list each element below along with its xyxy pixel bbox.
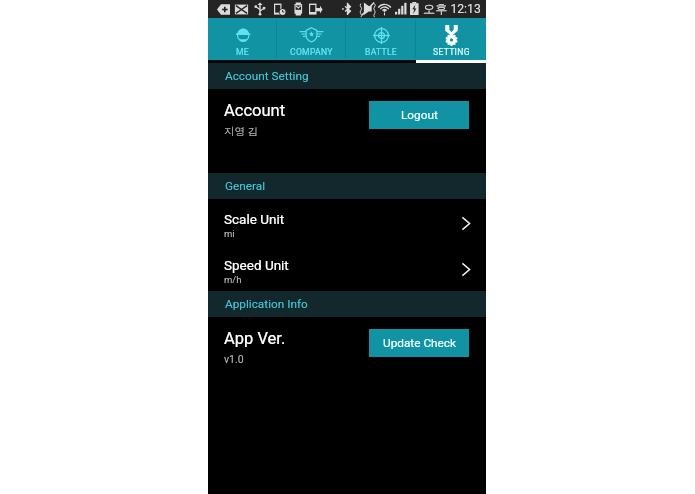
- staticText: 오후 12:13: [423, 1, 481, 16]
- button[interactable]: Scale Unit: [208, 199, 486, 245]
- staticText: General: [225, 179, 266, 193]
- staticText: v1.0: [224, 353, 244, 365]
- button[interactable]: SETTING: [416, 18, 486, 60]
- staticText: BATTLE: [365, 47, 398, 57]
- staticText: Logout: [401, 108, 438, 122]
- button[interactable]: Logout: [369, 101, 469, 129]
- other: Open Scale Unit: [461, 216, 471, 231]
- button[interactable]: Update Check: [369, 329, 469, 357]
- button[interactable]: Speed Unit: [208, 245, 486, 291]
- staticText: 지영 김: [224, 125, 259, 138]
- staticText: mi: [224, 228, 235, 239]
- staticText: SETTING: [433, 47, 470, 57]
- staticText: COMPANY: [290, 47, 333, 57]
- button[interactable]: App Ver.: [208, 317, 486, 401]
- staticText: App Ver.: [224, 329, 286, 348]
- staticText: m/h: [224, 274, 242, 285]
- staticText: Account Setting: [225, 69, 309, 83]
- staticText: Application Info: [225, 297, 308, 311]
- button[interactable]: COMPANY: [277, 18, 346, 60]
- button[interactable]: ME: [208, 18, 277, 60]
- staticText: Update Check: [383, 336, 456, 350]
- staticText: Account: [224, 101, 286, 120]
- button[interactable]: BATTLE: [346, 18, 416, 60]
- button[interactable]: Account: [208, 89, 486, 173]
- staticText: ME: [236, 47, 249, 57]
- other: Open Speed Unit: [461, 262, 471, 277]
- staticText: Speed Unit: [224, 257, 289, 273]
- staticText: Scale Unit: [224, 211, 285, 227]
